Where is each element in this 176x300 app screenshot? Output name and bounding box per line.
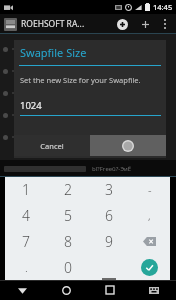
staticText: 0 [64, 258, 72, 277]
staticText: 9 [105, 232, 113, 251]
button[interactable]: Enter [129, 254, 170, 280]
button[interactable]: Backspace [129, 228, 170, 254]
button[interactable]: New [138, 17, 152, 31]
button[interactable]: , [129, 202, 170, 228]
button[interactable] [3, 38, 173, 60]
button[interactable] [90, 135, 166, 156]
button[interactable]: 1 [5, 177, 47, 202]
button[interactable]: Add swapfile [114, 16, 130, 32]
button[interactable]: Recent apps [100, 280, 120, 300]
staticText: Set the new Size for your Swapfile. [20, 75, 141, 85]
staticText: Ы?Fгееũ?-ЭиЁ [92, 165, 132, 173]
button[interactable]: Cancel [14, 135, 90, 156]
button[interactable] [3, 126, 173, 148]
staticText: 4 [22, 206, 30, 225]
button[interactable]: - [129, 177, 170, 202]
button[interactable]: ROEHSOFT RA... [21, 18, 114, 30]
staticText: Swapfile Size [20, 45, 87, 60]
staticText: , [148, 208, 151, 223]
staticText: 1024 [20, 99, 42, 112]
button[interactable]: 9 [88, 228, 129, 254]
button[interactable]: 7 [5, 228, 47, 254]
button[interactable]: Home [56, 280, 76, 300]
staticText: 8 [64, 232, 72, 251]
button[interactable]: 2 [47, 177, 88, 202]
button[interactable]: 5 [47, 202, 88, 228]
staticText: 3 [105, 180, 113, 199]
button[interactable]: 4 [5, 202, 47, 228]
button[interactable]: More options [158, 17, 172, 31]
staticText: 7 [22, 232, 30, 251]
staticText: 6 [105, 206, 113, 225]
button[interactable]: 6 [88, 202, 129, 228]
button[interactable]: 3 [88, 177, 129, 202]
staticText: 2 [64, 180, 72, 199]
button[interactable]: Switch keyboard [144, 280, 164, 300]
button[interactable] [3, 82, 173, 104]
button[interactable] [3, 60, 173, 82]
button[interactable]: 8 [47, 228, 88, 254]
button[interactable]: Space [88, 254, 129, 280]
staticText: . [25, 260, 28, 275]
button[interactable] [3, 104, 173, 126]
staticText: Cancel [40, 141, 64, 151]
button[interactable]: App icon [4, 18, 17, 31]
staticText: 14:45 [153, 2, 173, 12]
staticText: - [148, 182, 152, 197]
staticText: 5 [64, 206, 72, 225]
staticText: 1 [22, 180, 30, 199]
button[interactable]: Back [12, 280, 32, 300]
button[interactable]: 0 [47, 254, 88, 280]
button[interactable]: . [5, 254, 47, 280]
button[interactable]: 1024 [20, 99, 161, 116]
